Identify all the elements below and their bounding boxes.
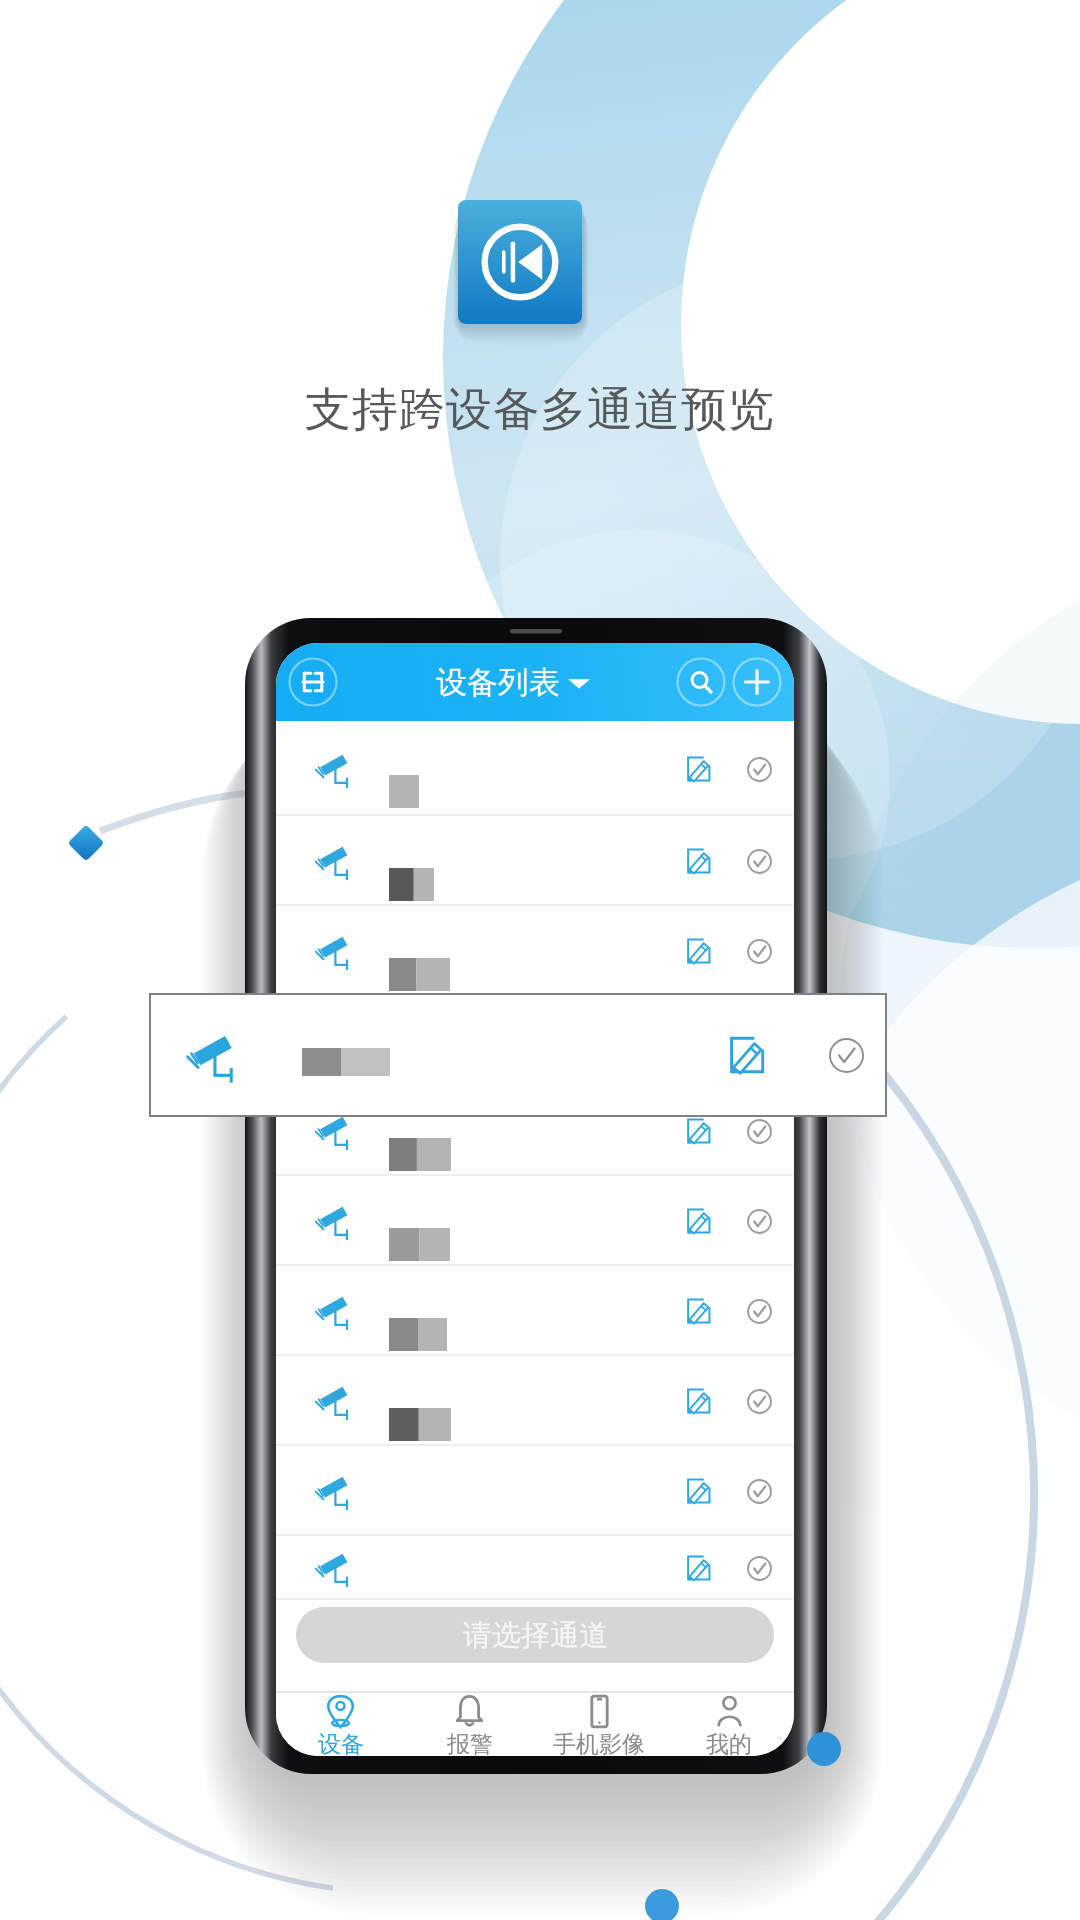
button[interactable]: Edit device (276, 1176, 794, 1266)
button[interactable]: Select device (739, 1111, 779, 1151)
button[interactable]: Select device (815, 1024, 877, 1086)
button[interactable]: Select device (739, 841, 779, 881)
button[interactable]: Edit device (276, 906, 794, 996)
button[interactable]: Edit device (276, 1356, 794, 1446)
button[interactable]: Edit device (678, 1111, 718, 1151)
staticText: 支持跨设备多通道预览 (0, 381, 1080, 439)
button[interactable]: Edit device (276, 1086, 794, 1176)
button[interactable]: Select device (739, 1291, 779, 1331)
button[interactable]: Select device (739, 1548, 779, 1588)
button[interactable]: Search (676, 657, 726, 707)
button[interactable]: Edit device (276, 816, 794, 906)
button[interactable]: Edit device (276, 996, 794, 1086)
button[interactable]: Edit device (678, 1381, 718, 1421)
staticText: 设备 (318, 1730, 364, 1756)
button[interactable]: Edit device (678, 1471, 718, 1511)
button[interactable]: 设备 (276, 1694, 405, 1756)
staticText: 设备列表 (436, 663, 560, 702)
staticText: 报警 (447, 1730, 493, 1756)
staticText: 手机影像 (553, 1730, 645, 1756)
button[interactable]: Select device (739, 1021, 779, 1061)
button[interactable]: Edit device (678, 1201, 718, 1241)
button[interactable]: Edit device (276, 721, 794, 816)
staticText: 我的 (706, 1730, 752, 1756)
button[interactable]: Edit device (678, 1291, 718, 1331)
button[interactable]: Edit device (678, 931, 718, 971)
button[interactable]: Edit device (276, 1266, 794, 1356)
button[interactable]: Edit device (678, 1548, 718, 1588)
button[interactable]: Add device (732, 657, 782, 707)
button[interactable]: 请选择通道 (296, 1607, 774, 1663)
button[interactable]: Edit device (276, 1446, 794, 1536)
button[interactable]: Select device (739, 1381, 779, 1421)
button[interactable]: Select device (739, 1471, 779, 1511)
button[interactable]: Select device (739, 1201, 779, 1241)
staticText: 请选择通道 (463, 1617, 608, 1654)
button[interactable]: 报警 (405, 1694, 534, 1756)
button[interactable]: 手机影像 (534, 1694, 664, 1756)
button[interactable]: Select device (739, 749, 779, 789)
button[interactable]: 我的 (664, 1694, 794, 1756)
button[interactable]: Scan QR code (288, 657, 338, 707)
button[interactable]: Edit device (678, 749, 718, 789)
button[interactable]: Edit device (149, 993, 887, 1117)
button[interactable]: Select device (739, 931, 779, 971)
button[interactable]: 设备列表 (430, 659, 596, 706)
button[interactable]: Edit device (678, 841, 718, 881)
button[interactable]: Edit device (276, 1536, 794, 1600)
button[interactable]: Edit device (715, 1024, 777, 1086)
